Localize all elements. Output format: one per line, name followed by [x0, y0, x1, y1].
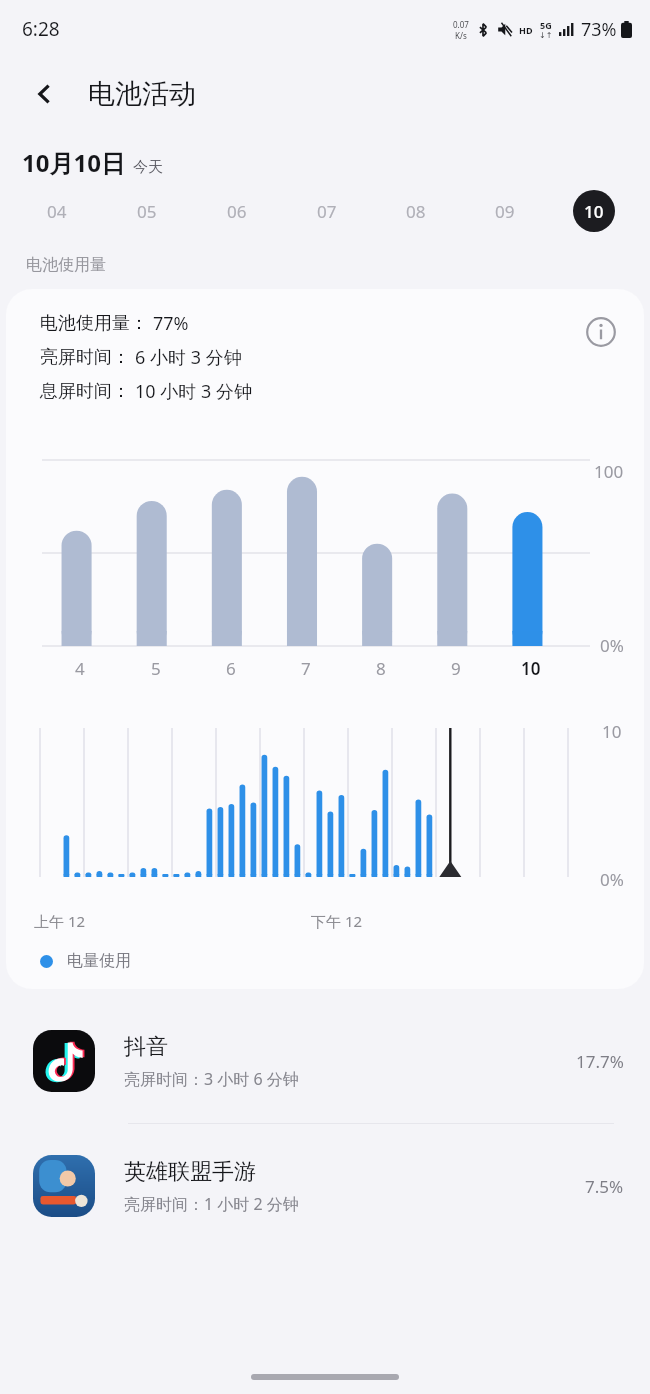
staticText: 亮屏时间：: [40, 346, 130, 369]
button[interactable]: 英雄联盟手游: [0, 1124, 650, 1248]
staticText: 07: [317, 200, 337, 223]
staticText: 息屏时间：: [40, 380, 130, 403]
staticText: 10: [521, 657, 541, 680]
staticText: 7: [301, 657, 311, 680]
button[interactable]: Info: [580, 311, 622, 353]
staticText: 5: [151, 657, 161, 680]
staticText: K/s: [455, 30, 467, 41]
staticText: 09: [495, 200, 515, 223]
staticText: 6: [226, 657, 236, 680]
staticText: 今天: [133, 158, 163, 177]
button[interactable]: Back: [22, 71, 68, 117]
button[interactable]: 04: [12, 179, 102, 243]
staticText: HD: [519, 24, 533, 36]
button[interactable]: 10: [549, 179, 638, 243]
staticText: 10 小时 3 分钟: [135, 379, 252, 404]
staticText: 6:28: [22, 16, 60, 42]
staticText: 亮屏时间：1 小时 2 分钟: [124, 1193, 299, 1215]
staticText: 亮屏时间：3 小时 6 分钟: [124, 1068, 299, 1090]
button[interactable]: 05: [102, 179, 192, 243]
staticText: 8: [376, 657, 386, 680]
staticText: 17.7%: [576, 1050, 624, 1073]
staticText: 73%: [581, 17, 617, 42]
staticText: 下午 12: [311, 911, 363, 931]
staticText: 10: [584, 200, 604, 223]
staticText: 上午 12: [34, 911, 86, 931]
staticText: 77%: [153, 311, 189, 336]
staticText: 电池活动: [88, 77, 196, 111]
staticText: 6 小时 3 分钟: [135, 345, 242, 370]
staticText: 0%: [600, 634, 624, 657]
staticText: 英雄联盟手游: [124, 1158, 256, 1186]
staticText: 9: [451, 657, 461, 680]
staticText: 电池使用量: [26, 255, 106, 275]
button[interactable]: 电量使用: [40, 951, 131, 971]
staticText: 4: [75, 657, 85, 680]
staticText: 0%: [600, 868, 624, 891]
staticText: 04: [47, 200, 67, 223]
button[interactable]: 06: [192, 179, 282, 243]
button[interactable]: 08: [371, 179, 460, 243]
staticText: 5G: [540, 19, 552, 31]
staticText: 电池使用量：: [40, 312, 148, 335]
staticText: ↓↑: [539, 31, 553, 40]
staticText: 电量使用: [67, 951, 131, 971]
staticText: 10月10日: [22, 146, 125, 179]
button[interactable]: 抖音: [0, 999, 650, 1123]
staticText: 100: [594, 460, 624, 483]
staticText: 0.07: [453, 19, 469, 30]
staticText: 05: [137, 200, 157, 223]
button[interactable]: 07: [282, 179, 371, 243]
staticText: 抖音: [124, 1033, 168, 1061]
button[interactable]: 09: [460, 179, 549, 243]
staticText: 08: [406, 200, 426, 223]
staticText: 06: [227, 200, 247, 223]
staticText: 10: [602, 720, 622, 743]
staticText: 7.5%: [585, 1175, 624, 1198]
